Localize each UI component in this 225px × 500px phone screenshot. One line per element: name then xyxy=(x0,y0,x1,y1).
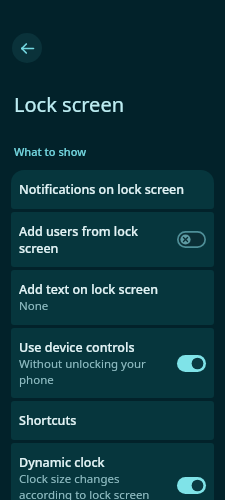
staticText: Add users from lock screen xyxy=(19,223,171,256)
staticText: None xyxy=(19,298,49,314)
staticText: Clock size changes according to lock scr… xyxy=(19,471,171,500)
button[interactable]: Toggle on xyxy=(177,355,206,372)
button[interactable]: Toggle on xyxy=(177,477,206,494)
button[interactable]: Add text on lock screen xyxy=(11,270,214,325)
staticText: Without unlocking your phone xyxy=(19,356,171,387)
button[interactable]: Notifications on lock screen xyxy=(11,170,214,209)
staticText: Notifications on lock screen xyxy=(19,181,185,198)
staticText: Add text on lock screen xyxy=(19,281,159,298)
staticText: What to show xyxy=(14,144,87,159)
button[interactable]: Dynamic clock xyxy=(11,443,214,500)
staticText: Dynamic clock xyxy=(19,454,105,471)
staticText: Lock screen xyxy=(14,91,125,118)
button[interactable]: Add users from lock screen xyxy=(11,212,214,267)
button[interactable]: Shortcuts xyxy=(11,401,214,440)
staticText: Shortcuts xyxy=(19,412,77,429)
button[interactable]: Back xyxy=(12,33,42,63)
button[interactable]: Toggle off xyxy=(177,231,206,248)
staticText: Use device controls xyxy=(19,339,135,356)
button[interactable]: Use device controls xyxy=(11,328,214,398)
